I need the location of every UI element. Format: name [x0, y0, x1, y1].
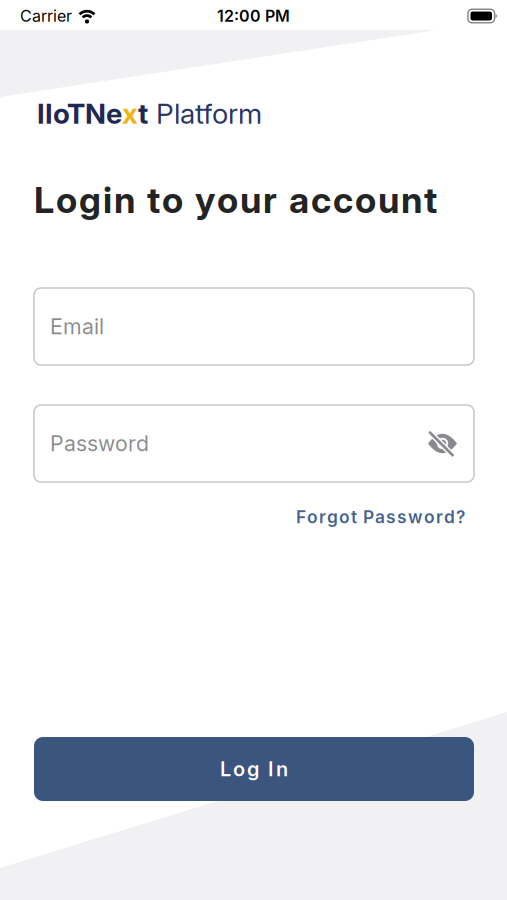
staticText: Platform — [148, 97, 262, 130]
staticText: Carrier — [20, 7, 72, 25]
button[interactable]: Email — [34, 288, 474, 365]
button[interactable]: Password — [34, 405, 474, 482]
staticText: L o g i n t o y o u r a c c o u n t — [34, 179, 437, 221]
staticText: Email — [50, 314, 104, 339]
staticText: F o r g o t P a s s w o r d ? — [296, 507, 465, 527]
staticText: 12:00 PM — [217, 7, 290, 25]
staticText: t — [138, 97, 148, 130]
staticText: x — [122, 97, 138, 130]
staticText: Password — [50, 431, 149, 456]
staticText: L o g I n — [220, 757, 288, 781]
staticText: IIoTNe — [37, 97, 122, 130]
button[interactable]: L o g I n — [34, 737, 474, 801]
button[interactable]: F o r g o t P a s s w o r d ? — [0, 507, 507, 527]
